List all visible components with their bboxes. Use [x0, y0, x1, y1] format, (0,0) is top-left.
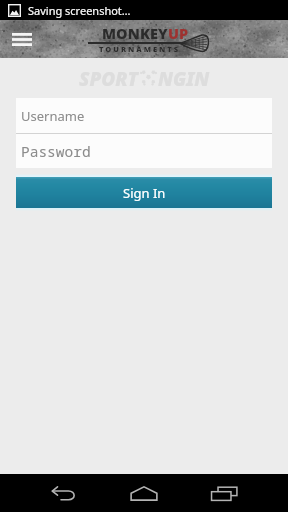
button[interactable]: Back	[35, 474, 91, 512]
button[interactable]: Home	[116, 474, 172, 512]
staticText: Password	[21, 141, 91, 161]
button[interactable]: Recent apps	[196, 474, 252, 512]
staticText: Sign In	[123, 184, 166, 202]
staticText: NGIN	[158, 66, 210, 88]
button[interactable]: Password	[16, 134, 272, 168]
staticText: SPORT	[79, 66, 139, 88]
staticText: UP	[168, 23, 189, 43]
staticText: TOURNAMENTS	[99, 44, 181, 54]
staticText: Username	[21, 107, 85, 125]
button[interactable]: Sign In	[16, 177, 272, 208]
staticText: MONKEY	[102, 23, 168, 43]
button[interactable]: Username	[16, 98, 272, 133]
button[interactable]: Menu	[4, 20, 40, 58]
staticText: Saving screenshot…	[28, 3, 131, 18]
